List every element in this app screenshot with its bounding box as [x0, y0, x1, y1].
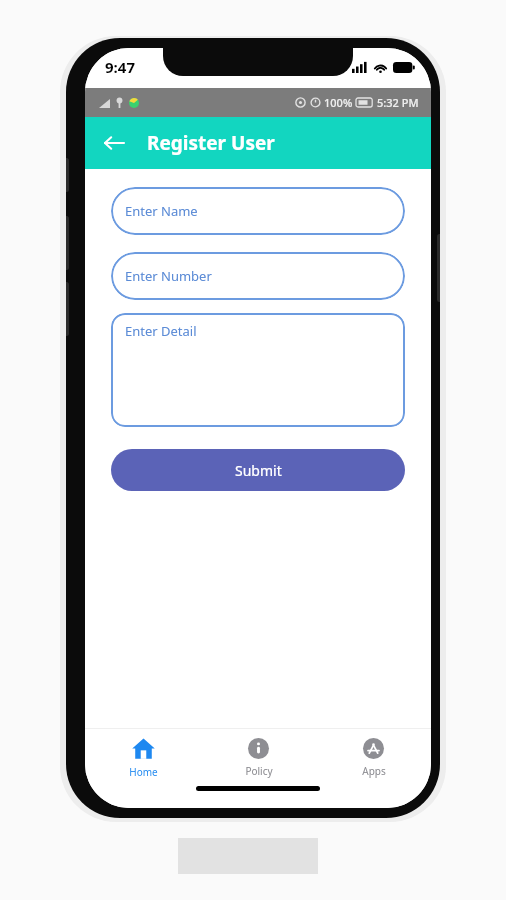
staticText: Enter Name [125, 202, 198, 220]
staticText: 9:47 [105, 57, 135, 77]
staticText: 100% [324, 95, 353, 110]
button[interactable]: Policy [201, 729, 316, 786]
button[interactable]: Enter Name [111, 187, 405, 235]
staticText: Policy [245, 764, 273, 778]
button[interactable]: Enter Detail [111, 313, 405, 427]
button[interactable]: Enter Number [111, 252, 405, 300]
button[interactable]: Submit [111, 449, 405, 491]
button[interactable]: Back [95, 124, 133, 162]
staticText: Apps [362, 764, 386, 778]
staticText: Home [129, 765, 158, 779]
button[interactable]: Home [85, 729, 201, 786]
staticText: Enter Detail [125, 322, 197, 340]
button[interactable]: Apps [316, 729, 431, 786]
staticText: 5:32 PM [377, 95, 419, 110]
staticText: Register User [147, 130, 275, 156]
staticText: Submit [235, 461, 282, 480]
staticText: Enter Number [125, 267, 212, 285]
